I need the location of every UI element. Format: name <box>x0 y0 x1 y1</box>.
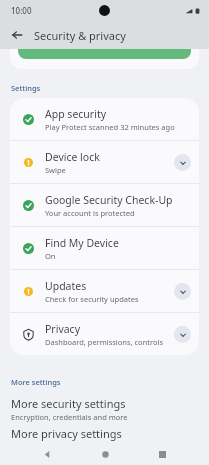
staticText: Privacy <box>45 322 81 336</box>
button[interactable]: Device lock <box>10 141 199 183</box>
button[interactable]: Find My Device <box>10 227 199 269</box>
button[interactable]: Back <box>37 444 57 464</box>
button[interactable]: More privacy settings <box>0 426 209 443</box>
staticText: Device lock <box>45 150 100 164</box>
button[interactable] <box>10 49 199 69</box>
button[interactable]: Expand Privacy <box>174 326 191 343</box>
button[interactable]: Google Security Check-Up <box>10 184 199 226</box>
staticText: Find My Device <box>45 236 119 250</box>
staticText: Your account is protected <box>45 208 135 218</box>
staticText: 10:00 <box>11 5 32 16</box>
staticText: Updates <box>45 279 87 293</box>
staticText: Encryption, credentials and more <box>11 412 128 422</box>
staticText: More settings <box>11 377 61 387</box>
button[interactable]: Expand Updates <box>174 283 191 300</box>
button[interactable]: App security <box>10 98 199 140</box>
staticText: Google Security Check-Up <box>45 193 173 207</box>
staticText: More privacy settings <box>11 426 122 441</box>
button[interactable]: Recent apps <box>152 444 172 464</box>
staticText: Settings <box>11 83 41 93</box>
button[interactable]: Expand Device lock <box>174 154 191 171</box>
staticText: On <box>45 251 56 261</box>
button[interactable]: More security settings <box>0 392 209 426</box>
button[interactable]: Updates <box>10 270 199 312</box>
staticText: Security & privacy <box>34 28 126 43</box>
button[interactable]: Privacy <box>10 313 199 355</box>
button[interactable]: Back <box>6 24 28 46</box>
button[interactable]: Home <box>95 444 115 464</box>
staticText: App security <box>45 107 107 121</box>
staticText: Swipe <box>45 165 66 175</box>
staticText: Check for security updates <box>45 294 139 304</box>
staticText: Dashboard, permissions, controls <box>45 337 164 347</box>
staticText: More security settings <box>11 396 126 411</box>
staticText: Play Protect scanned 32 minutes ago <box>45 122 175 132</box>
